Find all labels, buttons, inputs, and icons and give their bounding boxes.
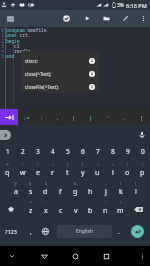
button[interactable]: - xyxy=(83,180,98,200)
staticText: . xyxy=(118,227,120,236)
button[interactable]: close(^Text); xyxy=(21,67,99,80)
button[interactable]: @ xyxy=(8,180,23,200)
button[interactable]: Enter xyxy=(131,225,144,238)
button[interactable]: $ xyxy=(38,180,53,200)
button[interactable]: % xyxy=(0,161,15,181)
button[interactable]: : xyxy=(68,199,83,219)
staticText: z xyxy=(29,206,33,216)
button[interactable]: ' xyxy=(99,109,116,125)
button[interactable]: 7 xyxy=(90,141,105,161)
button[interactable]: Voice input xyxy=(136,129,147,140)
button[interactable]: More options xyxy=(136,10,150,27)
button[interactable]: ( xyxy=(113,180,128,200)
staticText: < xyxy=(97,162,99,167)
button[interactable]: { xyxy=(120,161,135,181)
button[interactable]: Back xyxy=(34,246,54,266)
button[interactable]: [ xyxy=(60,161,75,181)
staticText: := xyxy=(23,114,30,121)
staticText: i xyxy=(112,168,114,178)
staticText: } xyxy=(142,162,144,167)
staticText: English xyxy=(76,228,94,235)
button[interactable]: Home xyxy=(65,246,85,266)
button[interactable]: 3 xyxy=(30,141,45,161)
button[interactable]: Navigation menu xyxy=(3,10,18,27)
staticText: f xyxy=(59,187,62,197)
button[interactable]: Shift xyxy=(0,199,22,219)
staticText: e xyxy=(36,168,40,178)
staticText: clrscr; xyxy=(25,58,38,64)
button[interactable]: Run xyxy=(80,10,94,27)
staticText: 3% xyxy=(117,2,125,9)
button[interactable]: ' xyxy=(53,199,68,219)
staticText: ; xyxy=(90,200,91,205)
button[interactable]: & xyxy=(68,180,83,200)
button[interactable]: = xyxy=(45,161,60,181)
staticText: & xyxy=(74,181,77,186)
button[interactable]: Open file xyxy=(99,10,113,27)
staticText: 5 xyxy=(1,53,4,59)
staticText: a xyxy=(14,187,18,197)
staticText: $ xyxy=(45,181,47,186)
button[interactable]: 2 xyxy=(15,141,30,161)
button[interactable]: _ xyxy=(53,180,68,200)
staticText: x xyxy=(44,206,48,216)
button[interactable]: ? xyxy=(113,199,128,219)
button[interactable]: 9 xyxy=(120,141,135,161)
button[interactable]: Change keyboard language xyxy=(38,221,53,242)
button[interactable]: < xyxy=(90,161,105,181)
button[interactable]: , xyxy=(50,109,66,125)
button[interactable]: > xyxy=(105,161,120,181)
staticText: c xyxy=(59,206,63,216)
button[interactable]: " xyxy=(38,199,53,219)
button[interactable]: Hide keyboard xyxy=(0,246,24,266)
button[interactable]: Expand suggestions xyxy=(0,130,11,140)
button[interactable]: ] xyxy=(75,161,90,181)
button[interactable]: More xyxy=(132,246,150,266)
button[interactable]: closeFile(^Text); xyxy=(21,80,99,93)
button[interactable]: ( xyxy=(66,109,82,125)
button[interactable]: ?123 xyxy=(0,221,22,242)
button[interactable]: , xyxy=(23,221,39,242)
button[interactable]: . xyxy=(116,109,133,125)
button[interactable]: # xyxy=(23,180,38,200)
button[interactable]: | xyxy=(30,161,45,181)
staticText: ( xyxy=(72,114,76,121)
staticText: 1 xyxy=(6,147,10,156)
button[interactable]: clrscr; xyxy=(21,55,99,67)
button[interactable]: } xyxy=(135,161,150,181)
staticText: cl xyxy=(6,43,20,49)
staticText: , xyxy=(56,114,60,121)
staticText: program newfile; xyxy=(6,27,50,33)
button[interactable]: [ xyxy=(133,109,150,125)
button[interactable]: := xyxy=(18,109,34,125)
button[interactable]: ; xyxy=(83,199,98,219)
button[interactable]: Save xyxy=(59,10,73,27)
button[interactable]: Recent apps xyxy=(96,246,116,266)
button[interactable]: ! xyxy=(98,199,113,219)
button[interactable]: Backspace xyxy=(127,199,150,219)
button[interactable]: 5 xyxy=(60,141,75,161)
staticText: uses crt; xyxy=(6,32,31,38)
button[interactable]: \ xyxy=(15,161,30,181)
button[interactable]: . xyxy=(112,221,126,242)
staticText: begin xyxy=(6,38,20,44)
button[interactable]: 4 xyxy=(45,141,60,161)
button[interactable]: 1 xyxy=(0,141,15,161)
button[interactable]: : xyxy=(34,109,50,125)
button[interactable]: Edit xyxy=(118,10,132,27)
staticText: ( xyxy=(120,181,122,186)
staticText: 4 xyxy=(1,48,4,54)
staticText: 6:16 PM xyxy=(126,2,147,9)
staticText: _ xyxy=(60,181,62,186)
button[interactable]: ) xyxy=(82,109,99,125)
button[interactable]: * xyxy=(23,199,38,219)
button[interactable]: 8 xyxy=(105,141,120,161)
button[interactable]: 0 xyxy=(135,141,150,161)
button[interactable]: Tab xyxy=(0,109,18,125)
staticText: 0 xyxy=(1,27,4,33)
button[interactable]: ) xyxy=(128,180,143,200)
staticText: ' xyxy=(60,200,61,205)
button[interactable]: + xyxy=(98,180,113,200)
button[interactable]: 6 xyxy=(75,141,90,161)
button[interactable]: English xyxy=(57,225,112,238)
